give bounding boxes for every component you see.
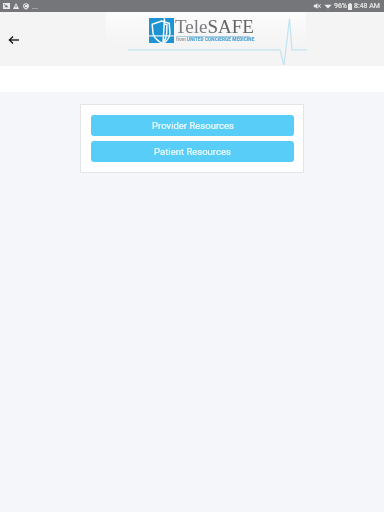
- staticText: UNITED CONCIERGE MEDICINE: [187, 37, 255, 42]
- button[interactable]: Patient Resources: [91, 141, 294, 162]
- staticText: Provider Resources: [152, 120, 234, 131]
- staticText: TeleSAFE: [175, 16, 254, 37]
- staticText: 96%: [334, 2, 347, 10]
- staticText: ...: [32, 2, 38, 11]
- button[interactable]: Provider Resources: [91, 115, 294, 136]
- staticText: from: [176, 37, 187, 42]
- button[interactable]: Back: [0, 26, 28, 54]
- staticText: 8:48 AM: [354, 2, 380, 10]
- staticText: Patient Resources: [154, 146, 231, 157]
